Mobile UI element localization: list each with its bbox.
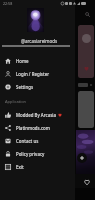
button[interactable]: Favourites <box>82 177 91 186</box>
staticText: Home <box>16 58 29 64</box>
staticText: Exit <box>16 164 24 170</box>
button[interactable]: Settings <box>0 80 75 93</box>
staticText: @arcasiareimods <box>21 38 58 44</box>
button[interactable]: Modded By Arcasia <box>0 108 75 121</box>
staticText: Modded By Arcasia <box>16 112 57 118</box>
button[interactable]: Contact us <box>0 134 75 147</box>
button[interactable]: Exit <box>0 160 75 173</box>
button[interactable] <box>78 83 88 87</box>
staticText: Login / Register <box>16 71 50 77</box>
button[interactable]: Home <box>0 54 75 67</box>
button[interactable] <box>78 91 94 128</box>
button[interactable]: Login / Register <box>0 67 75 80</box>
staticText: Platinmods.com <box>16 125 50 131</box>
staticText: 22:58 <box>3 1 13 6</box>
button[interactable]: Search <box>82 9 92 19</box>
button[interactable]: Policy privacy <box>0 147 75 160</box>
button[interactable] <box>78 25 94 78</box>
button[interactable]: Platinmods.com <box>0 121 75 134</box>
staticText: Application <box>5 99 27 104</box>
staticText: Policy privacy <box>16 151 45 157</box>
staticText: Contact us <box>16 138 39 144</box>
button[interactable]: Add <box>77 153 87 163</box>
staticText: Settings <box>16 84 34 90</box>
